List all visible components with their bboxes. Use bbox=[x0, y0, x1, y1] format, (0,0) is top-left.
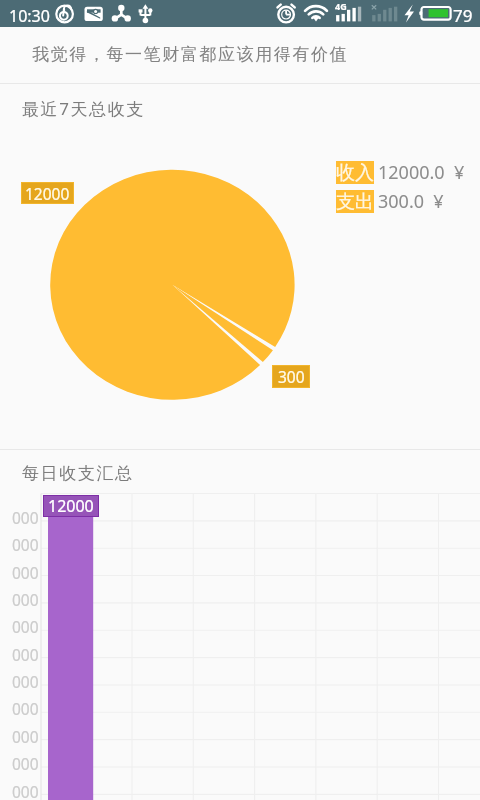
staticText: 000 bbox=[12, 644, 39, 665]
staticText: 79 bbox=[453, 4, 473, 27]
staticText: 12000.0 ¥ bbox=[378, 160, 465, 185]
staticText: 000 bbox=[12, 698, 39, 719]
staticText: 我觉得，每一笔财富都应该用得有价值 bbox=[32, 44, 349, 65]
staticText: 000 bbox=[12, 726, 39, 747]
staticText: 最近7天总收支 bbox=[22, 97, 145, 120]
staticText: 000 bbox=[12, 507, 39, 528]
staticText: 300.0 ¥ bbox=[378, 189, 444, 214]
staticText: 300 bbox=[278, 366, 305, 387]
staticText: 12000 bbox=[25, 183, 70, 204]
staticText: 每日收支汇总 bbox=[22, 463, 134, 484]
staticText: 000 bbox=[12, 671, 39, 692]
button[interactable]: 我觉得，每一笔财富都应该用得有价值 bbox=[0, 27, 480, 83]
staticText: 4G bbox=[335, 0, 347, 12]
staticText: 000 bbox=[12, 781, 39, 800]
staticText: 支出 bbox=[336, 190, 374, 213]
staticText: 10:30 bbox=[9, 5, 50, 27]
staticText: 000 bbox=[12, 534, 39, 555]
staticText: 000 bbox=[12, 562, 39, 583]
staticText: 000 bbox=[12, 589, 39, 610]
staticText: 12000 bbox=[48, 495, 94, 517]
staticText: 000 bbox=[12, 753, 39, 774]
staticText: 收入 bbox=[336, 161, 374, 184]
staticText: 000 bbox=[12, 616, 39, 637]
